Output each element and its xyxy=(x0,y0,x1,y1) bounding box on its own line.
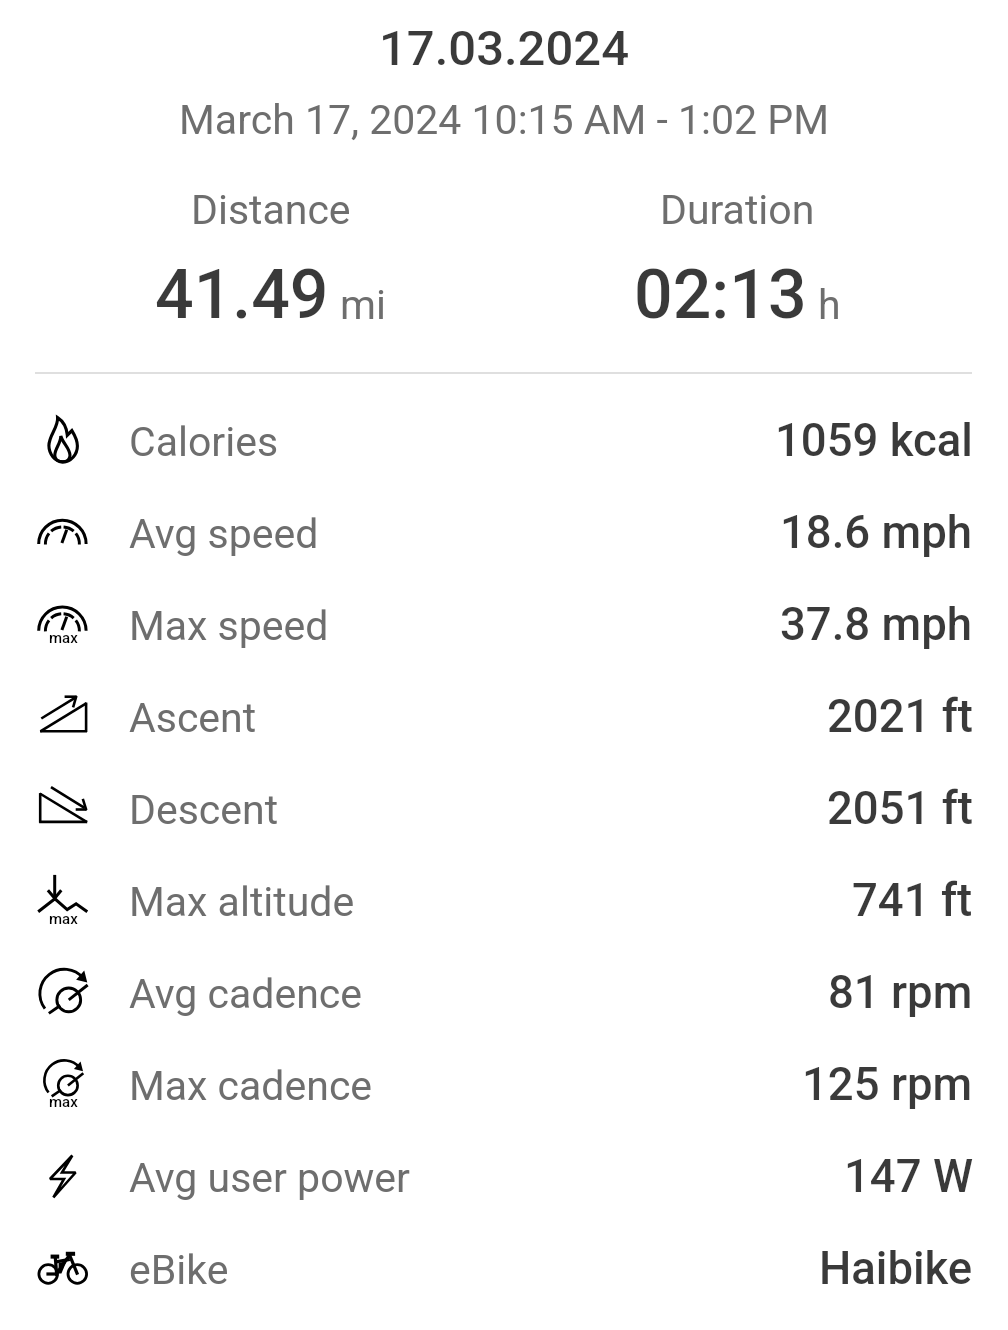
other: Max speed xyxy=(35,598,91,654)
staticText: Calories xyxy=(129,418,279,466)
staticText: Distance xyxy=(191,186,351,234)
staticText: 1059 kcal xyxy=(775,414,973,467)
staticText: 81 rpm xyxy=(828,966,973,1019)
staticText: 37.8 mph xyxy=(780,598,973,651)
staticText: 17.03.2024 xyxy=(0,20,1008,77)
other: eBike xyxy=(35,1242,91,1298)
staticText: Avg speed xyxy=(129,510,319,558)
staticText: eBike xyxy=(129,1246,229,1294)
staticText: Avg user power xyxy=(129,1154,410,1202)
button[interactable]: Ascent xyxy=(0,672,1008,764)
staticText: Max speed xyxy=(129,602,329,650)
staticText: Duration xyxy=(660,186,815,234)
button[interactable]: Max altitude xyxy=(0,856,1008,948)
other: Calories xyxy=(35,414,91,470)
button[interactable]: Calories xyxy=(0,396,1008,488)
staticText: max xyxy=(49,910,78,928)
other: Max cadence xyxy=(35,1058,91,1114)
other: Avg speed xyxy=(35,506,91,562)
staticText: Avg cadence xyxy=(129,970,363,1018)
other: Avg cadence xyxy=(35,966,91,1022)
button[interactable]: Max cadence xyxy=(0,1040,1008,1132)
staticText: 2021 ft xyxy=(827,690,973,743)
staticText: 147 W xyxy=(844,1150,973,1203)
staticText: 741 ft xyxy=(852,874,973,927)
staticText: 2051 ft xyxy=(827,782,973,835)
button[interactable]: Avg speed xyxy=(0,488,1008,580)
staticText: March 17, 2024 10:15 AM - 1:02 PM xyxy=(0,96,1008,144)
staticText: Max cadence xyxy=(129,1062,373,1110)
other: Descent xyxy=(35,782,91,838)
staticText: h xyxy=(818,281,841,329)
staticText: Max altitude xyxy=(129,878,355,926)
staticText: 02:13 xyxy=(634,255,807,335)
staticText: max xyxy=(49,1093,78,1111)
staticText: 125 rpm xyxy=(802,1058,973,1111)
staticText: Descent xyxy=(129,786,279,834)
other: Avg user power xyxy=(35,1150,91,1206)
staticText: Ascent xyxy=(129,694,257,742)
other: Max altitude xyxy=(35,874,91,930)
button[interactable]: Max speed xyxy=(0,580,1008,672)
staticText: mi xyxy=(340,281,386,329)
staticText: 18.6 mph xyxy=(780,506,973,559)
button[interactable]: Avg user power xyxy=(0,1132,1008,1224)
staticText: 41.49 xyxy=(155,255,329,335)
staticText: Haibike xyxy=(819,1242,973,1295)
other: Ascent xyxy=(35,690,91,746)
staticText: max xyxy=(49,629,78,647)
button[interactable]: Descent xyxy=(0,764,1008,856)
button[interactable]: eBike xyxy=(0,1224,1008,1316)
button[interactable]: Avg cadence xyxy=(0,948,1008,1040)
